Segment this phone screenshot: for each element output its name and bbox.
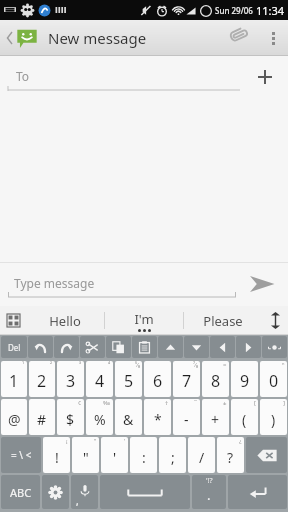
staticText: &: [123, 410, 134, 429]
staticText: .: [207, 486, 211, 504]
staticText: -: [184, 410, 189, 429]
button[interactable]: #: [29, 399, 55, 435]
staticText: 5: [124, 370, 134, 392]
button[interactable]: 9: [231, 361, 258, 397]
button[interactable]: ⁿ: [260, 361, 287, 397]
button[interactable]: &: [115, 399, 142, 435]
button[interactable]: Left: [210, 336, 235, 358]
button[interactable]: Cut: [80, 336, 105, 358]
button[interactable]: Del: [1, 336, 27, 358]
staticText: :: [142, 448, 146, 467]
staticText: @: [8, 410, 21, 429]
staticText: ': [113, 448, 117, 467]
staticText: ): [271, 410, 276, 429]
button[interactable]: Enter: [228, 475, 287, 509]
button[interactable]: Undo: [28, 336, 53, 358]
button[interactable]: Send: [244, 266, 280, 302]
staticText: 0: [269, 370, 279, 392]
button[interactable]: †: [144, 399, 171, 435]
staticText: [: [254, 399, 256, 407]
staticText: Hello: [49, 312, 81, 330]
button[interactable]: ¯: [173, 399, 200, 435]
staticText: =: [223, 361, 227, 369]
button[interactable]: =: [202, 361, 229, 397]
button[interactable]: I'm: [105, 306, 183, 335]
staticText: “: [94, 437, 97, 445]
button[interactable]: To: [8, 63, 240, 91]
staticText: ,: [76, 494, 79, 508]
staticText: ¡: [66, 437, 68, 445]
staticText: %: [94, 410, 106, 429]
staticText: ³: [79, 361, 82, 369]
button[interactable]: :: [130, 437, 157, 473]
staticText: ¹: [22, 361, 25, 369]
button[interactable]: ¡: [43, 437, 70, 473]
staticText: '!?: [206, 476, 213, 486]
button[interactable]: Space: [100, 475, 190, 509]
button[interactable]: Up: [158, 336, 183, 358]
staticText: †: [165, 399, 169, 407]
staticText: Type message: [14, 275, 95, 291]
staticText: (: [242, 410, 247, 429]
button[interactable]: ;: [159, 437, 186, 473]
button[interactable]: ‘: [101, 437, 128, 473]
button[interactable]: Redo: [54, 336, 79, 358]
staticText: ²: [50, 361, 53, 369]
button[interactable]: Type message: [8, 270, 236, 298]
staticText: 2: [37, 370, 47, 392]
button[interactable]: Paste: [132, 336, 157, 358]
staticText: To: [16, 68, 30, 84]
staticText: 3: [66, 370, 76, 392]
staticText: I'm: [134, 310, 154, 328]
button[interactable]: Attach: [222, 20, 258, 56]
button[interactable]: ⁴: [86, 361, 113, 397]
button[interactable]: ‰: [86, 399, 113, 435]
staticText: *: [154, 410, 162, 429]
button[interactable]: [: [231, 399, 258, 435]
button[interactable]: ABC: [1, 475, 40, 509]
button[interactable]: ]: [260, 399, 287, 435]
button[interactable]: = \ <: [1, 437, 41, 473]
button[interactable]: Select: [262, 336, 287, 358]
staticText: ¯: [194, 399, 198, 407]
button[interactable]: ⁵⁄₈: [115, 361, 142, 397]
button[interactable]: Down: [184, 336, 209, 358]
staticText: 7: [182, 370, 192, 392]
staticText: #: [37, 410, 47, 429]
button[interactable]: Add recipient: [250, 62, 280, 92]
staticText: 4: [95, 370, 105, 392]
button[interactable]: Voice input: [71, 475, 98, 509]
button[interactable]: ²: [29, 361, 55, 397]
staticText: Del: [8, 342, 21, 353]
button[interactable]: 6: [144, 361, 171, 397]
staticText: 11:34: [256, 3, 285, 18]
staticText: ⁵⁄₈: [135, 361, 140, 369]
staticText: ¿: [239, 437, 242, 445]
button[interactable]: ±: [202, 399, 229, 435]
staticText: ‰: [103, 399, 111, 407]
button[interactable]: @: [1, 399, 27, 435]
staticText: 9: [240, 370, 250, 392]
button[interactable]: ¢: [57, 399, 84, 435]
staticText: New message: [48, 28, 147, 48]
button[interactable]: '!?: [192, 475, 226, 509]
button[interactable]: Hello: [26, 306, 104, 335]
staticText: ¢: [78, 399, 82, 407]
button[interactable]: Clipboard: [0, 306, 26, 335]
button[interactable]: ¹: [1, 361, 27, 397]
staticText: /: [199, 448, 205, 467]
button[interactable]: ¿: [217, 437, 244, 473]
button[interactable]: /: [188, 437, 215, 473]
button[interactable]: ³: [57, 361, 84, 397]
button[interactable]: Settings: [42, 475, 69, 509]
button[interactable]: ⁷⁄₈: [173, 361, 200, 397]
button[interactable]: More options: [258, 23, 288, 53]
button[interactable]: Expand suggestions: [262, 306, 288, 335]
staticText: ]: [283, 399, 285, 407]
button[interactable]: Right: [236, 336, 261, 358]
button[interactable]: Up: [4, 27, 40, 49]
button[interactable]: Copy: [106, 336, 131, 358]
button[interactable]: “: [72, 437, 99, 473]
button[interactable]: Please: [184, 306, 262, 335]
button[interactable]: Backspace: [246, 437, 287, 473]
